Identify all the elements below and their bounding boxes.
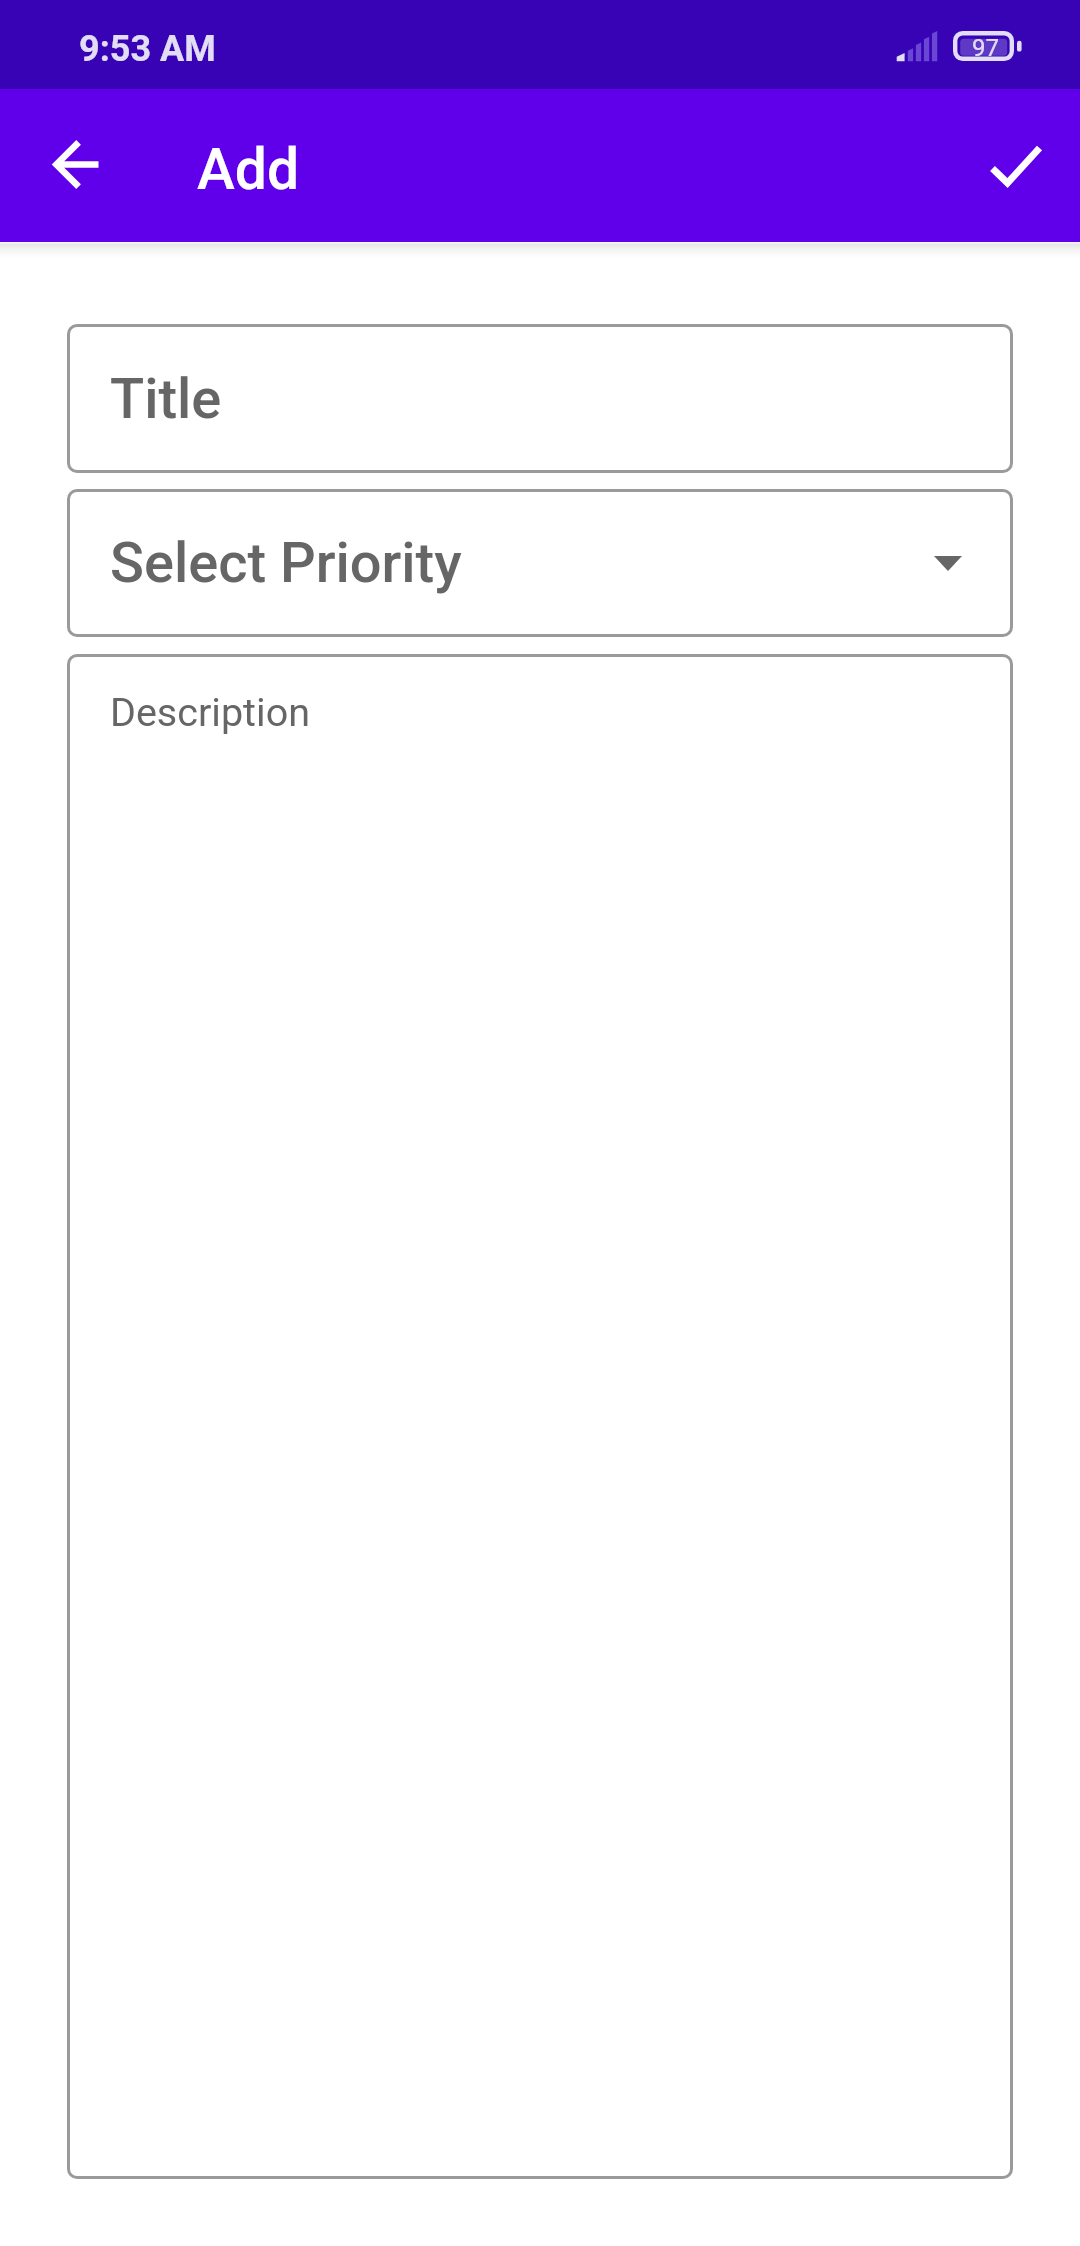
staticText: Add [197, 136, 300, 203]
staticText: Description [110, 689, 310, 735]
staticText: Select Priority [110, 530, 462, 596]
button[interactable]: Save [972, 121, 1061, 210]
button[interactable]: Title [67, 324, 1013, 473]
button[interactable]: Select Priority [67, 489, 1013, 637]
staticText: Title [110, 366, 222, 432]
button[interactable]: Description [67, 654, 1013, 2179]
staticText: 97 [972, 34, 999, 62]
staticText: 9:53 AM [79, 28, 216, 70]
button[interactable]: Back [31, 121, 120, 210]
